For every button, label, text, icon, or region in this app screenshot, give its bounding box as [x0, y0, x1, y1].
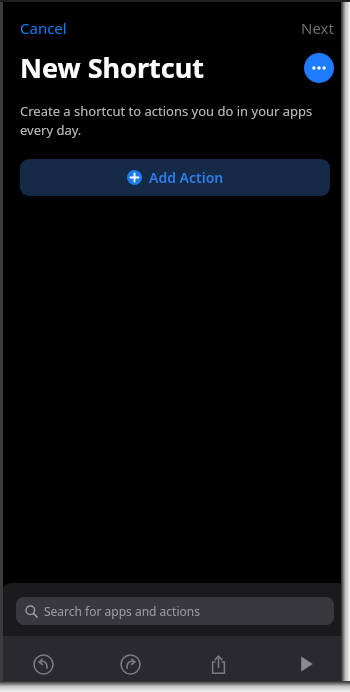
- button[interactable]: More options: [304, 53, 334, 83]
- staticText: Search for apps and actions: [44, 603, 200, 619]
- staticText: Create a shortcut to actions you do in y…: [20, 102, 320, 139]
- button[interactable]: Share: [174, 636, 262, 692]
- staticText: Add Action: [149, 168, 224, 187]
- staticText: New Shortcut: [20, 49, 204, 86]
- button[interactable]: Redo: [87, 636, 174, 692]
- button[interactable]: Next: [289, 14, 350, 42]
- staticText: Next: [301, 18, 334, 38]
- button[interactable]: Undo: [0, 636, 87, 692]
- button[interactable]: Add Action: [20, 159, 330, 196]
- button[interactable]: Run shortcut: [262, 636, 350, 692]
- button[interactable]: Search for apps and actions: [16, 597, 334, 625]
- staticText: Cancel: [20, 18, 67, 38]
- button[interactable]: Cancel: [0, 14, 79, 42]
